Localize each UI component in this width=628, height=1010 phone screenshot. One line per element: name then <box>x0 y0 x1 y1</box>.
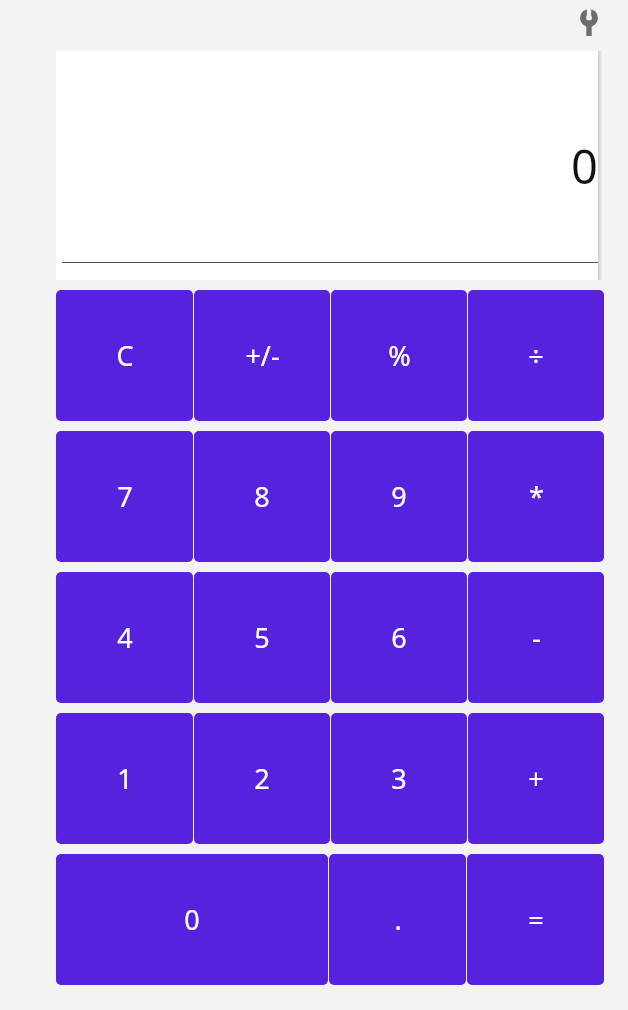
staticText: 2 <box>254 760 270 797</box>
staticText: * <box>529 478 544 515</box>
button[interactable]: 9 <box>331 431 467 562</box>
staticText: 0 <box>571 134 598 198</box>
button[interactable]: C <box>56 290 193 421</box>
button[interactable]: 4 <box>56 572 193 703</box>
staticText: C <box>116 337 134 374</box>
button[interactable]: 7 <box>56 431 193 562</box>
button[interactable]: * <box>468 431 604 562</box>
staticText: - <box>532 619 541 656</box>
staticText: ÷ <box>528 337 544 374</box>
button[interactable]: 5 <box>194 572 330 703</box>
staticText: 1 <box>117 760 133 797</box>
button[interactable]: 1 <box>56 713 193 844</box>
button[interactable]: 3 <box>331 713 467 844</box>
staticText: 5 <box>254 619 270 656</box>
staticText: 6 <box>391 619 407 656</box>
button[interactable]: . <box>329 854 466 985</box>
staticText: . <box>394 901 402 938</box>
button[interactable]: 6 <box>331 572 467 703</box>
button[interactable]: ÷ <box>468 290 604 421</box>
button[interactable]: 2 <box>194 713 330 844</box>
staticText: 4 <box>117 619 133 656</box>
button[interactable]: = <box>467 854 604 985</box>
button[interactable]: + <box>468 713 604 844</box>
staticText: 0 <box>184 901 200 938</box>
staticText: = <box>528 901 544 938</box>
button[interactable]: - <box>468 572 604 703</box>
button[interactable]: 8 <box>194 431 330 562</box>
staticText: + <box>528 760 544 797</box>
staticText: +/- <box>245 337 280 374</box>
button[interactable]: Settings <box>572 6 606 40</box>
button[interactable]: % <box>331 290 467 421</box>
staticText: 3 <box>391 760 407 797</box>
button[interactable]: 0 <box>56 854 328 985</box>
button[interactable]: +/- <box>194 290 330 421</box>
staticText: % <box>388 337 411 374</box>
staticText: 7 <box>117 478 133 515</box>
staticText: 8 <box>254 478 270 515</box>
staticText: 9 <box>391 478 407 515</box>
